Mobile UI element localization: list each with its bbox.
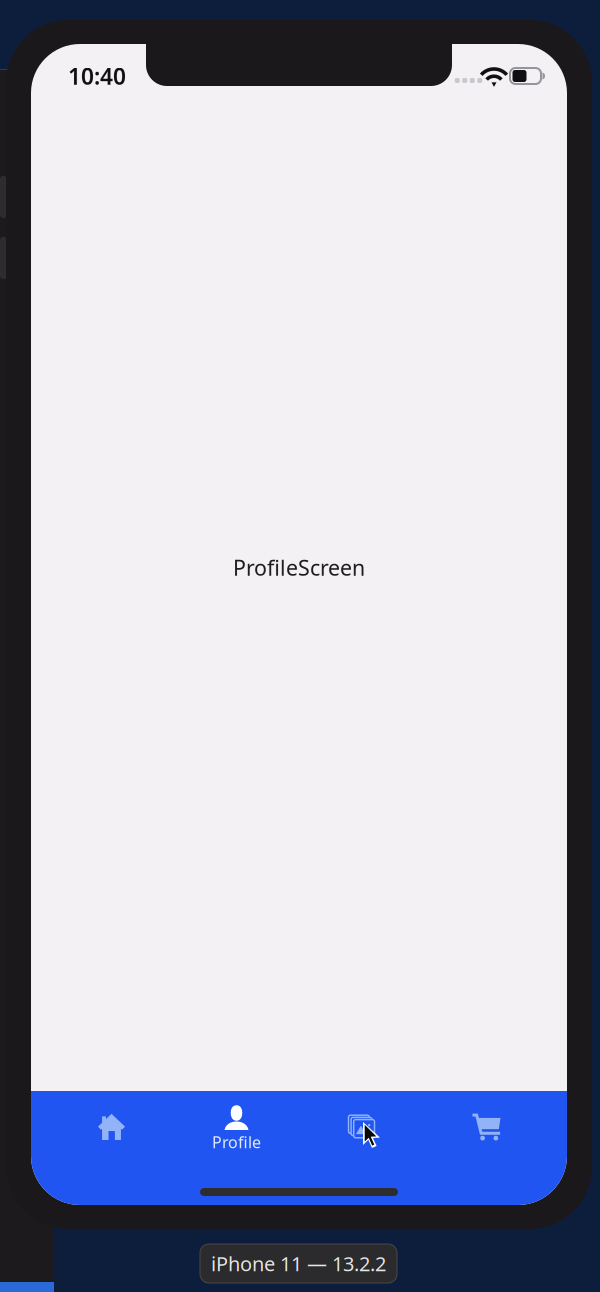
button[interactable]: Cart	[424, 1091, 549, 1162]
button[interactable]: Profile	[174, 1091, 299, 1162]
staticText: iPhone 11 — 13.2.2	[211, 1250, 386, 1277]
button[interactable]: Home	[49, 1091, 174, 1162]
staticText: ProfileScreen	[233, 553, 365, 582]
staticText: Profile	[212, 1131, 261, 1153]
staticText: 10:40	[68, 61, 126, 91]
button[interactable]: Gallery	[299, 1091, 424, 1162]
